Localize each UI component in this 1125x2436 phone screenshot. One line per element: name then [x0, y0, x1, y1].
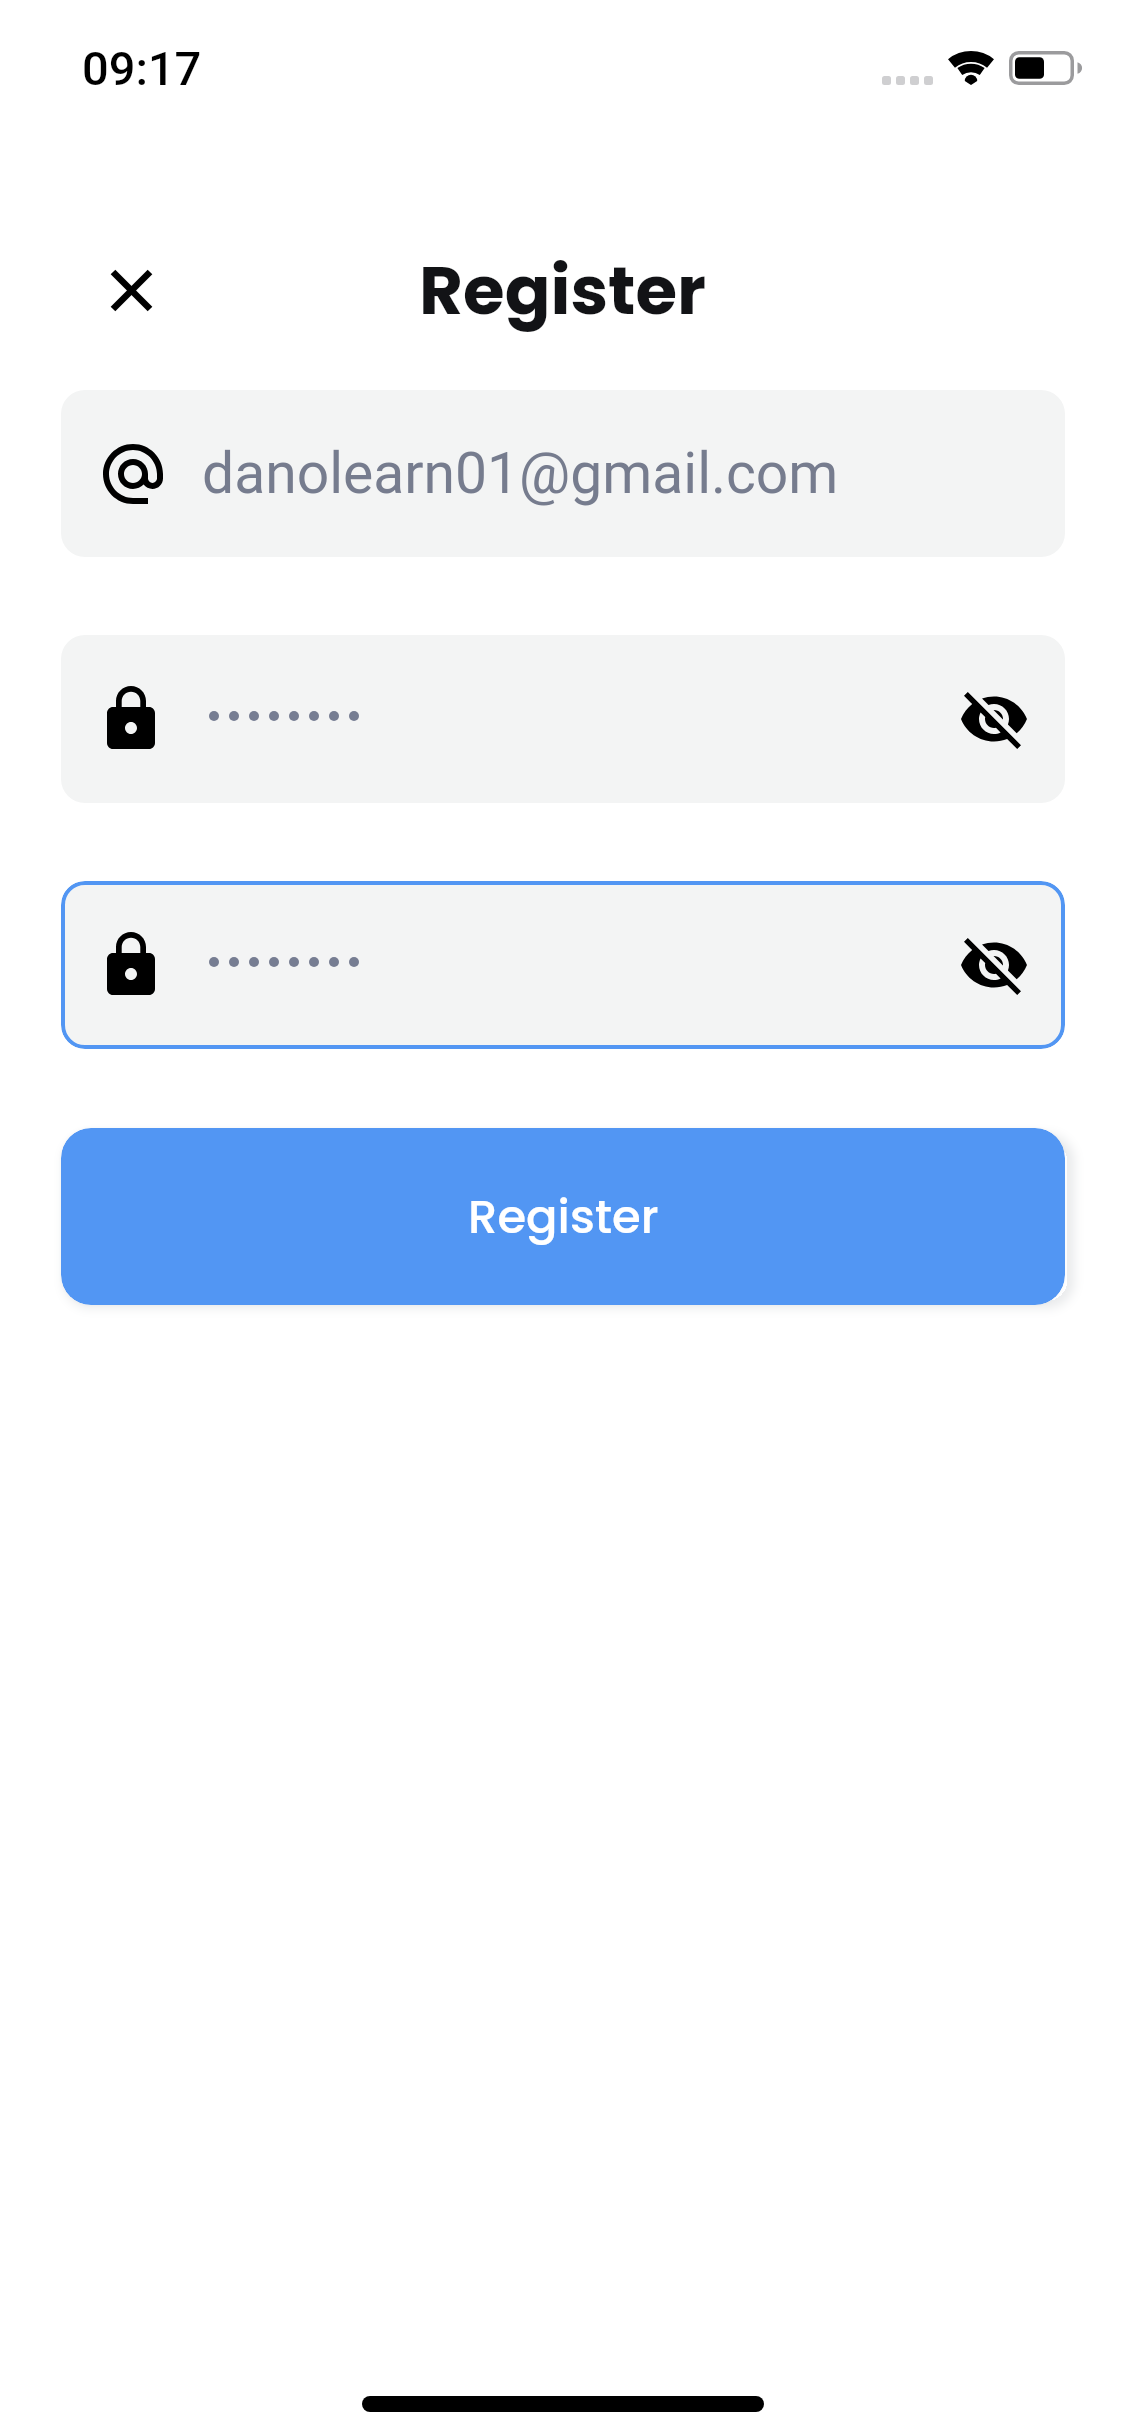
- button[interactable]: Show password: [939, 664, 1049, 774]
- button[interactable]: Password: [61, 635, 1065, 803]
- staticText: danolearn01@gmail.com: [202, 440, 839, 507]
- button[interactable]: Show password: [939, 910, 1049, 1020]
- staticText: 09:17: [82, 41, 202, 96]
- button[interactable]: Confirm password: [61, 881, 1065, 1049]
- staticText: Register: [419, 243, 706, 338]
- button[interactable]: Email: [61, 390, 1065, 557]
- button[interactable]: Register: [61, 1128, 1065, 1305]
- button[interactable]: Close: [89, 248, 173, 332]
- staticText: Register: [468, 1184, 659, 1249]
